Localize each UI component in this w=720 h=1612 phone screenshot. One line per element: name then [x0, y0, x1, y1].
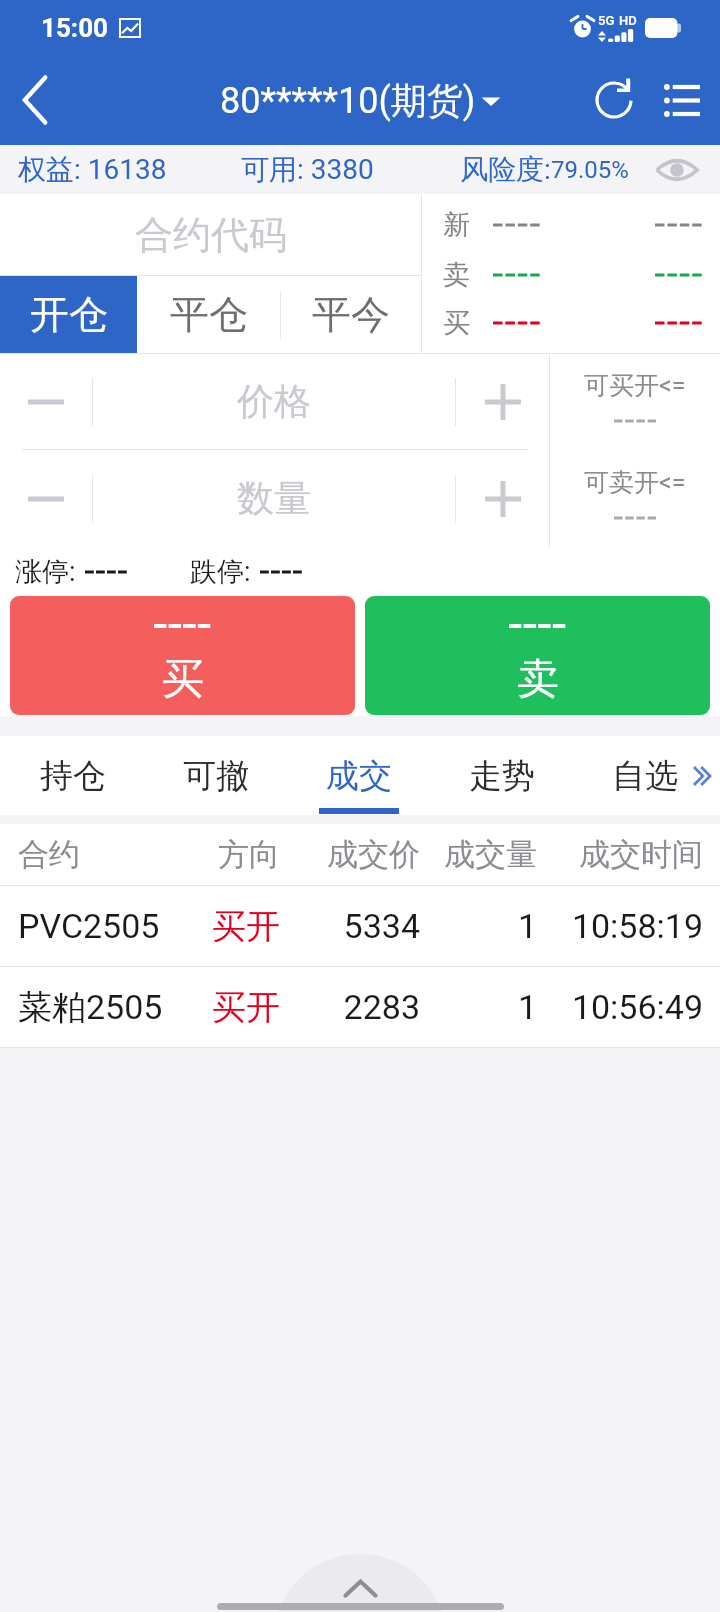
button[interactable]: 菜粕2505 [0, 967, 720, 1047]
staticText: 平今 [312, 290, 390, 339]
staticText: 合约 [18, 835, 212, 874]
staticText: 新 [443, 208, 470, 242]
staticText: 跌停: [190, 555, 251, 589]
button[interactable]: 价格 [93, 354, 455, 449]
staticText: 价格 [237, 378, 311, 425]
button[interactable]: 买 [10, 596, 355, 715]
staticText: 可卖开<= [584, 467, 686, 498]
staticText: 数量 [237, 475, 311, 522]
staticText: 5334 [280, 906, 420, 946]
staticText: 成交量 [420, 835, 537, 874]
button[interactable]: Decrease 数量 [0, 450, 92, 547]
staticText: 成交价 [280, 835, 420, 874]
button[interactable]: Increase 数量 [456, 450, 549, 547]
button[interactable]: 平今 [281, 276, 421, 353]
button[interactable]: 持仓 [1, 736, 144, 815]
staticText: 走势 [469, 755, 535, 797]
staticText: 10:56:49 [537, 987, 703, 1027]
staticText: 开仓 [30, 290, 108, 339]
staticText: 持仓 [40, 755, 106, 797]
button[interactable]: Back [0, 55, 72, 145]
staticText: 5G [598, 13, 615, 28]
button[interactable]: 平仓 [137, 276, 280, 353]
staticText: 79.05% [551, 156, 629, 184]
button[interactable]: 卖 [365, 596, 710, 715]
button[interactable]: Decrease 价格 [0, 354, 92, 449]
staticText: 15:00 [41, 13, 108, 43]
staticText: 卖 [517, 653, 559, 706]
staticText: 权益: 16138 [18, 152, 167, 187]
staticText: 买 [443, 306, 470, 340]
button[interactable]: PVC2505 [0, 886, 720, 966]
staticText: 1 [420, 906, 537, 946]
staticText: 买 [162, 653, 204, 706]
staticText: 涨停: [15, 555, 76, 589]
button[interactable]: Toggle balance visibility [653, 146, 701, 194]
staticText: 平仓 [170, 290, 248, 339]
staticText: 自选 [612, 755, 678, 797]
button[interactable]: 走势 [430, 736, 573, 815]
button[interactable]: 开仓 [0, 276, 137, 353]
staticText: 80*****10(期货) [220, 78, 476, 123]
staticText: HD [619, 13, 637, 28]
staticText: PVC2505 [18, 906, 212, 946]
button[interactable]: 数量 [93, 450, 455, 547]
staticText: 可用: 3380 [241, 152, 374, 187]
staticText: 成交 [326, 755, 392, 797]
button[interactable]: 成交 [287, 736, 430, 815]
staticText: 风险度: [460, 152, 551, 187]
staticText: 卖 [443, 258, 470, 292]
staticText: 买开 [212, 986, 280, 1029]
button[interactable]: 80*****10(期货) [220, 78, 501, 123]
staticText: 可买开<= [584, 370, 686, 401]
button[interactable]: 可撤 [144, 736, 287, 815]
staticText: 1 [420, 987, 537, 1027]
button[interactable]: Home [0, 1542, 720, 1612]
staticText: 10:58:19 [537, 906, 703, 946]
staticText: 买开 [212, 905, 280, 948]
button[interactable]: Refresh [584, 55, 644, 145]
staticText: 合约代码 [135, 211, 287, 259]
staticText: 方向 [212, 835, 280, 874]
staticText: 2283 [280, 987, 420, 1027]
button[interactable]: More tabs [684, 736, 720, 815]
button[interactable]: 自选 [573, 736, 716, 815]
button[interactable]: Increase 价格 [456, 354, 549, 449]
staticText: 成交时间 [537, 835, 703, 874]
staticText: 可撤 [183, 755, 249, 797]
button[interactable]: Menu [644, 55, 720, 145]
staticText: 菜粕2505 [18, 986, 212, 1029]
